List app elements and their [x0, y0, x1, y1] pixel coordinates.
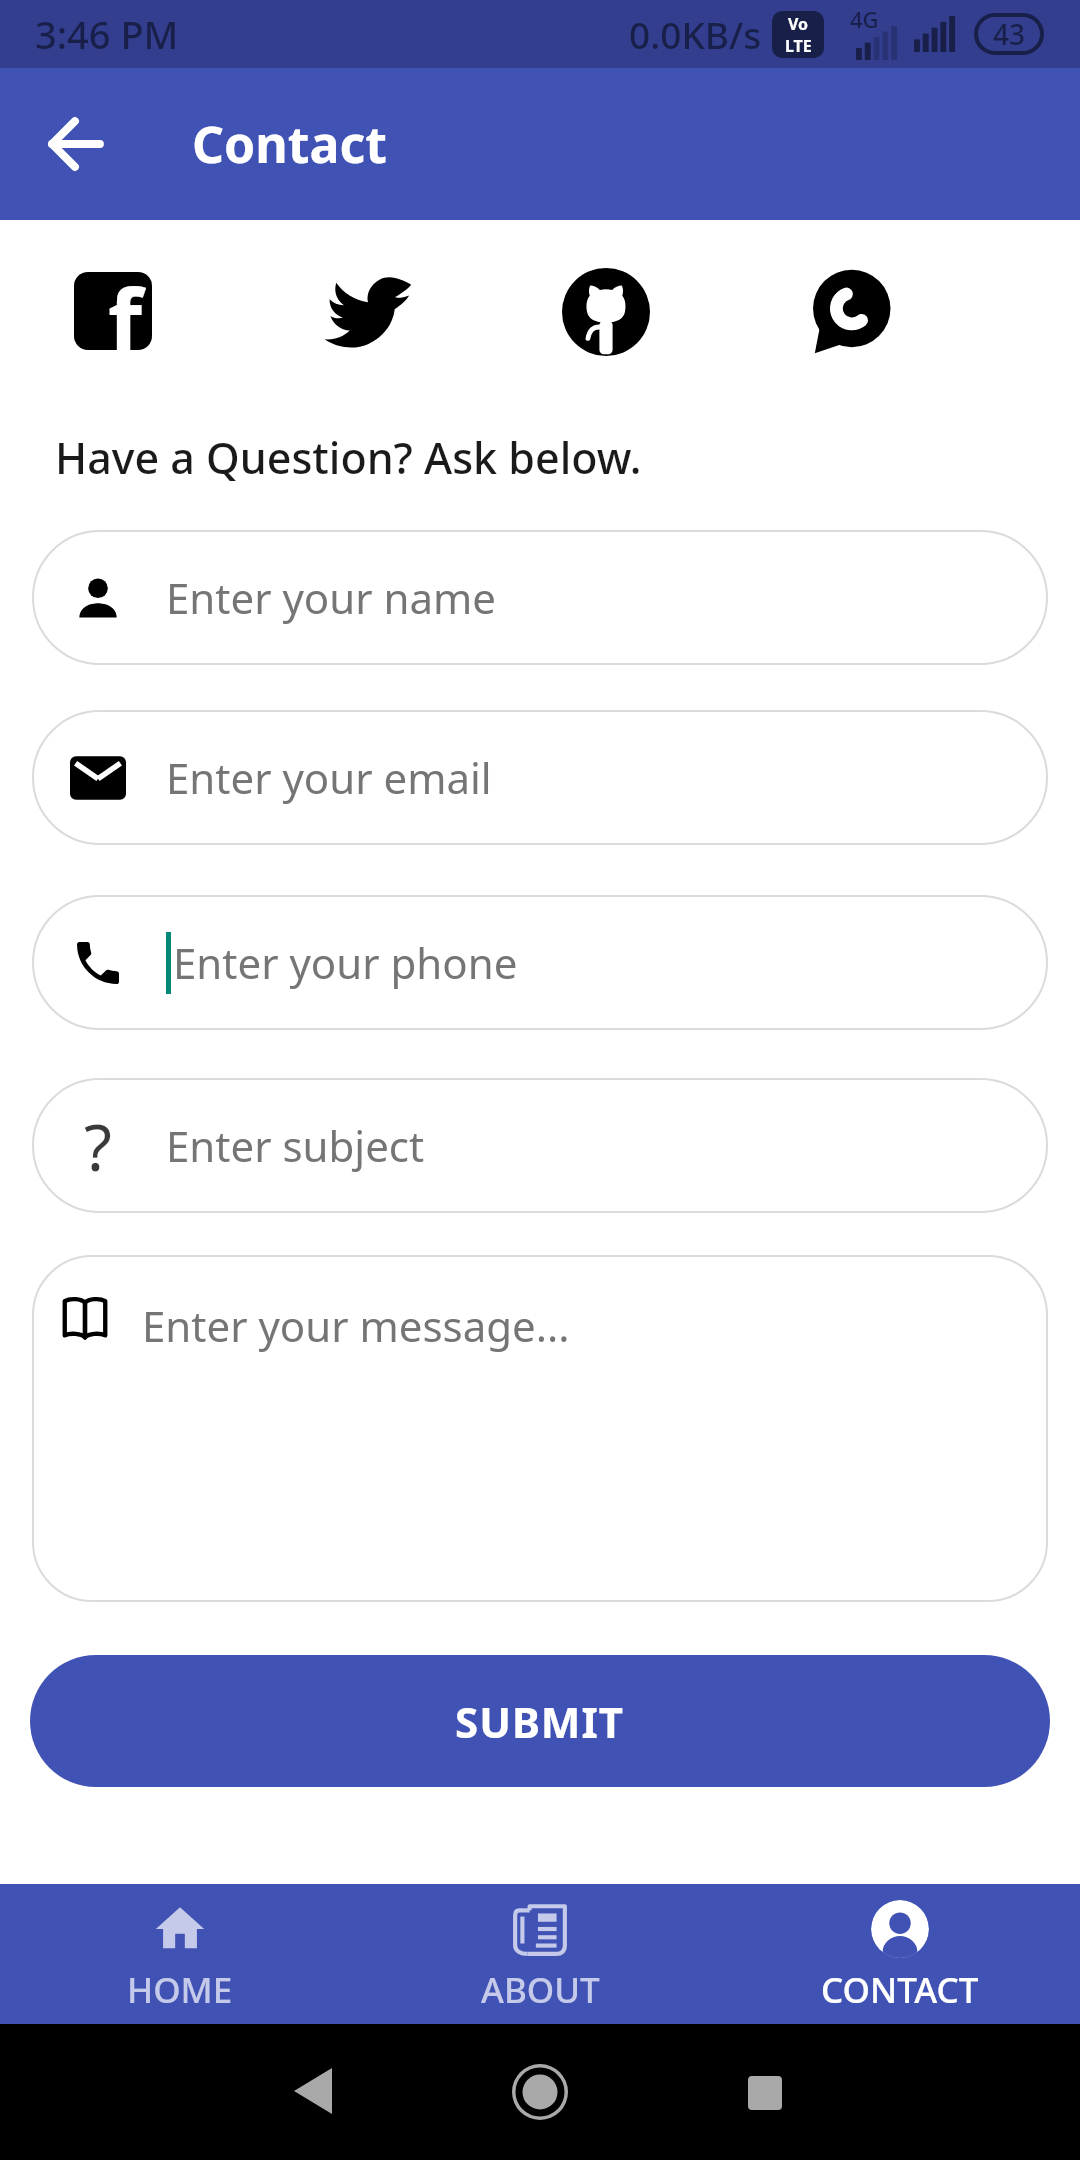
button[interactable] — [50, 118, 102, 170]
button[interactable]: f — [74, 272, 152, 350]
button[interactable]: SUBMIT — [30, 1655, 1050, 1787]
button[interactable]: Enter your email — [32, 710, 1048, 845]
button[interactable]: ? — [32, 1078, 1048, 1213]
staticText: CONTACT — [821, 1966, 979, 2014]
button[interactable]: Enter your name — [32, 530, 1048, 665]
staticText: ABOUT — [481, 1966, 600, 2014]
button[interactable]: ABOUT — [360, 1884, 720, 2024]
staticText: Enter your name — [166, 569, 496, 626]
staticText: SUBMIT — [455, 1693, 625, 1750]
staticText: HOME — [127, 1966, 233, 2014]
staticText: f — [108, 272, 143, 350]
staticText: Enter your phone — [173, 934, 518, 991]
button[interactable]: CONTACT — [720, 1884, 1080, 2024]
button[interactable] — [806, 268, 894, 356]
staticText: Contact — [192, 110, 387, 178]
staticText: 0.0KB/s — [629, 9, 762, 59]
button[interactable] — [562, 268, 650, 356]
button[interactable] — [512, 2064, 568, 2120]
button[interactable] — [748, 2076, 782, 2110]
staticText: ? — [84, 1103, 112, 1190]
button[interactable] — [294, 2068, 332, 2114]
button[interactable]: Enter your phone — [32, 895, 1048, 1030]
staticText: Vo — [788, 13, 809, 35]
button[interactable]: Enter your message... — [32, 1255, 1048, 1602]
staticText: Enter your message... — [142, 1297, 570, 1354]
staticText: Enter subject — [166, 1117, 425, 1174]
button[interactable]: HOME — [0, 1884, 360, 2024]
staticText: 43 — [993, 15, 1026, 53]
staticText: LTE — [785, 35, 812, 57]
staticText: Have a Question? Ask below. — [55, 428, 642, 487]
button[interactable] — [318, 272, 414, 350]
staticText: 4G — [850, 4, 879, 34]
staticText: 3:46 PM — [35, 8, 179, 60]
staticText: Enter your email — [166, 749, 492, 806]
